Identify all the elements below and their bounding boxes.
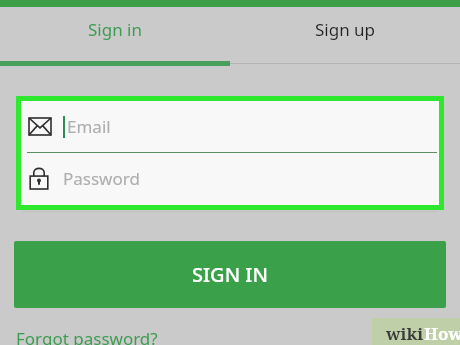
other: Password [29, 166, 49, 190]
other: Email [29, 118, 51, 135]
button[interactable]: Forgot password? [16, 327, 158, 345]
staticText: Sign up [315, 18, 376, 41]
staticText: wiki [386, 322, 424, 345]
button[interactable]: Sign up [230, 7, 460, 66]
staticText: Forgot password? [16, 327, 158, 345]
button[interactable]: Sign in [0, 7, 230, 66]
staticText: Password [63, 167, 140, 190]
button[interactable]: Email [21, 101, 439, 152]
button[interactable]: SIGN IN [14, 241, 446, 308]
staticText: Email [67, 115, 111, 138]
staticText: SIGN IN [192, 261, 268, 288]
staticText: How [424, 322, 460, 345]
staticText: Sign in [88, 18, 142, 41]
button[interactable]: Password [21, 153, 439, 203]
